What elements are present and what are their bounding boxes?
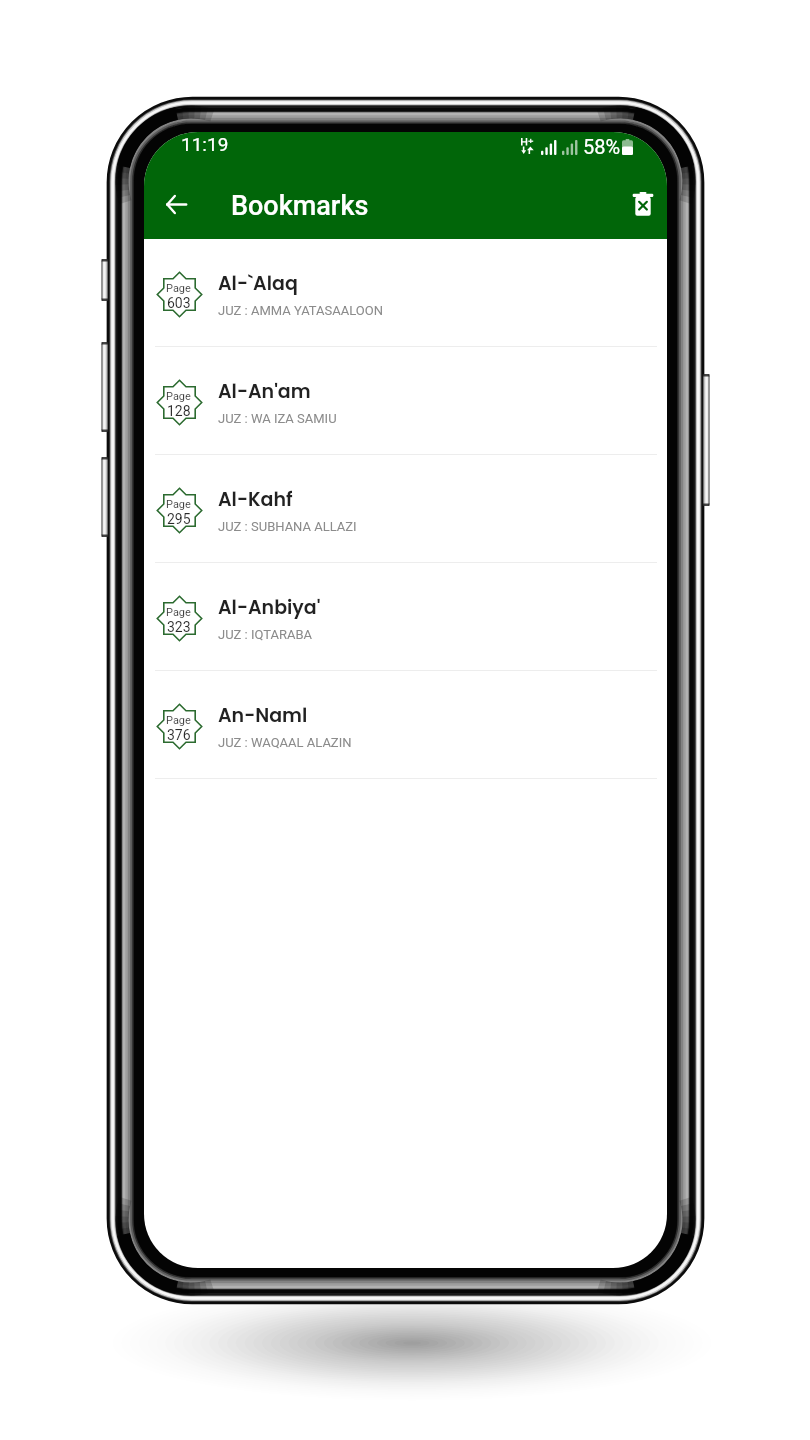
staticText: 603 bbox=[167, 295, 191, 311]
staticText: JUZ : WA IZA SAMIU bbox=[218, 411, 337, 426]
button[interactable]: Page bbox=[144, 563, 667, 671]
button[interactable]: Back bbox=[152, 180, 200, 228]
staticText: Al-Kahf bbox=[218, 486, 293, 513]
staticText: Al-Anbiya' bbox=[218, 594, 321, 621]
staticText: 128 bbox=[167, 403, 191, 419]
staticText: 323 bbox=[167, 619, 191, 635]
button[interactable]: Page bbox=[144, 455, 667, 563]
staticText: JUZ : AMMA YATASAALOON bbox=[218, 303, 384, 318]
staticText: Page bbox=[166, 390, 191, 403]
staticText: Al-`Alaq bbox=[218, 270, 298, 297]
staticText: 295 bbox=[167, 511, 191, 527]
staticText: Page bbox=[166, 714, 191, 727]
button[interactable]: Page bbox=[144, 239, 667, 347]
button[interactable]: Page bbox=[144, 347, 667, 455]
staticText: Page bbox=[166, 282, 191, 295]
staticText: Page bbox=[166, 606, 191, 619]
staticText: An-Naml bbox=[218, 702, 308, 729]
staticText: Page bbox=[166, 498, 191, 511]
staticText: 58% bbox=[583, 135, 621, 158]
staticText: 11:19 bbox=[181, 133, 229, 155]
staticText: Bookmarks bbox=[231, 190, 369, 222]
staticText: JUZ : IQTARABA bbox=[218, 627, 313, 642]
staticText: JUZ : WAQAAL ALAZIN bbox=[218, 735, 352, 750]
button[interactable]: Delete all bookmarks bbox=[619, 180, 667, 228]
staticText: 376 bbox=[167, 727, 191, 743]
staticText: JUZ : SUBHANA ALLAZI bbox=[218, 519, 357, 534]
button[interactable]: Page bbox=[144, 671, 667, 779]
staticText: Al-An'am bbox=[218, 378, 311, 405]
